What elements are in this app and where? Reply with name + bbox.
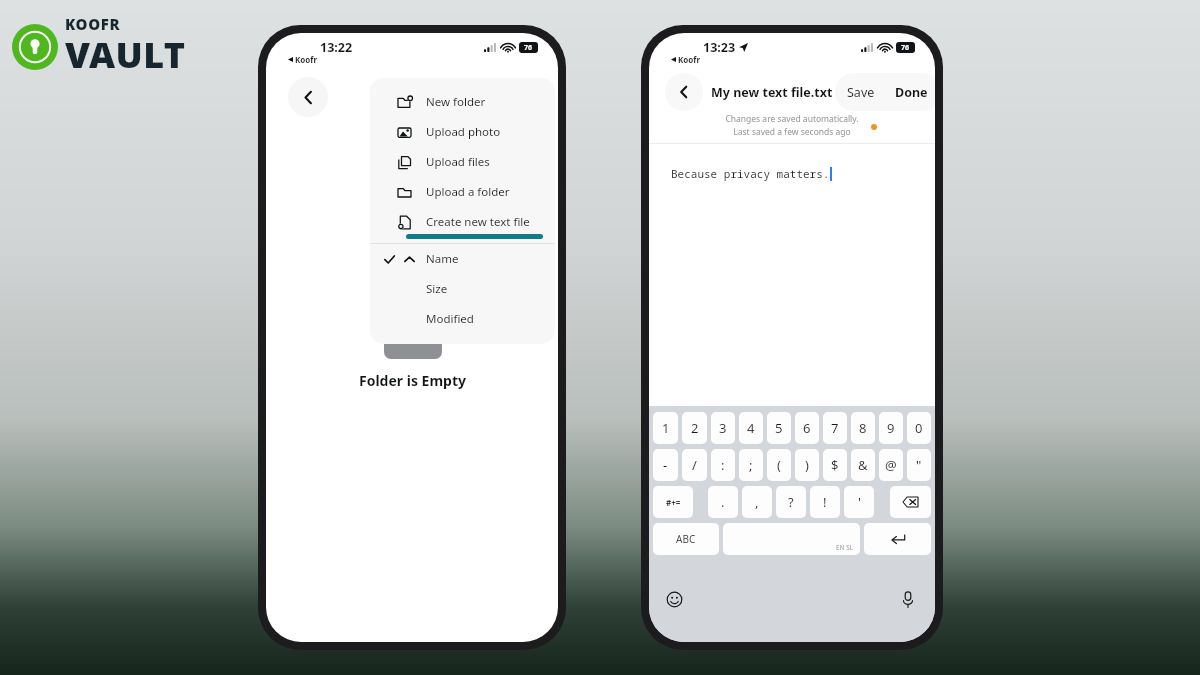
- staticText: Create new text file: [426, 214, 530, 230]
- staticText: Size: [426, 281, 448, 297]
- staticText: Upload a folder: [426, 184, 510, 200]
- button[interactable]: 4: [739, 412, 763, 444]
- button[interactable]: Emoji: [661, 586, 687, 612]
- staticText: 5: [775, 419, 783, 437]
- staticText: /: [692, 456, 697, 474]
- button[interactable]: :: [711, 449, 735, 481]
- button[interactable]: ': [844, 486, 874, 518]
- button[interactable]: 3: [711, 412, 735, 444]
- button[interactable]: ,: [742, 486, 772, 518]
- staticText: @: [885, 456, 897, 474]
- staticText: (: [777, 456, 781, 474]
- staticText: KOOFR: [65, 14, 121, 34]
- staticText: ,: [755, 493, 759, 511]
- staticText: Koofr: [678, 54, 700, 65]
- button[interactable]: 7: [823, 412, 847, 444]
- staticText: 9: [887, 419, 895, 437]
- staticText: &: [858, 456, 868, 474]
- staticText: !: [823, 493, 827, 511]
- staticText: Changes are saved automatically.: [725, 113, 859, 125]
- button[interactable]: Space: [723, 523, 860, 555]
- button[interactable]: !: [810, 486, 840, 518]
- button[interactable]: Name: [370, 244, 555, 274]
- staticText: 6: [803, 419, 811, 437]
- button[interactable]: ": [907, 449, 931, 481]
- staticText: ;: [749, 456, 753, 474]
- button[interactable]: @: [879, 449, 903, 481]
- staticText: 3: [719, 419, 727, 437]
- staticText: 2: [691, 419, 699, 437]
- staticText: Upload photo: [426, 124, 501, 140]
- button[interactable]: -: [653, 449, 678, 481]
- staticText: 7: [831, 419, 839, 437]
- button[interactable]: Save: [835, 74, 887, 111]
- button[interactable]: Done: [887, 74, 935, 111]
- staticText: ?: [788, 493, 794, 511]
- staticText: EN SL: [836, 543, 854, 552]
- button[interactable]: Size: [370, 274, 555, 304]
- staticText: 76: [524, 43, 533, 53]
- staticText: 8: [859, 419, 867, 437]
- button[interactable]: New folder: [370, 87, 555, 117]
- button[interactable]: ;: [739, 449, 763, 481]
- staticText: ': [858, 493, 861, 511]
- staticText: Done: [895, 84, 928, 101]
- staticText: New folder: [426, 94, 486, 110]
- button[interactable]: Dictation: [895, 586, 921, 612]
- button[interactable]: 0: [907, 412, 931, 444]
- staticText: 0: [915, 419, 923, 437]
- staticText: :: [721, 456, 725, 474]
- button[interactable]: Create new text file: [370, 207, 555, 237]
- button[interactable]: (: [767, 449, 791, 481]
- staticText: 76: [901, 43, 910, 53]
- button[interactable]: 2: [682, 412, 707, 444]
- button[interactable]: #+=: [653, 486, 693, 518]
- button[interactable]: 6: [795, 412, 819, 444]
- button[interactable]: ?: [776, 486, 806, 518]
- staticText: ABC: [676, 532, 696, 546]
- button[interactable]: 5: [767, 412, 791, 444]
- button[interactable]: Return: [864, 523, 931, 555]
- staticText: My new text file.txt: [711, 84, 833, 101]
- button[interactable]: /: [682, 449, 707, 481]
- button[interactable]: Modified: [370, 304, 555, 334]
- button[interactable]: &: [851, 449, 875, 481]
- staticText: ): [805, 456, 809, 474]
- staticText: $: [831, 456, 839, 474]
- staticText: Name: [426, 251, 459, 267]
- button[interactable]: 8: [851, 412, 875, 444]
- button[interactable]: ABC: [653, 523, 719, 555]
- staticText: Save: [847, 84, 875, 101]
- button[interactable]: $: [823, 449, 847, 481]
- staticText: 13:22: [320, 39, 353, 56]
- staticText: 4: [747, 419, 755, 437]
- button[interactable]: Back: [288, 77, 328, 117]
- staticText: VAULT: [65, 30, 186, 79]
- staticText: Because privacy matters.: [671, 166, 830, 181]
- staticText: Last saved a few seconds ago: [733, 126, 851, 138]
- staticText: -: [663, 456, 668, 474]
- button[interactable]: 1: [653, 412, 678, 444]
- staticText: 13:23: [703, 39, 736, 56]
- button[interactable]: Upload a folder: [370, 177, 555, 207]
- staticText: Upload files: [426, 154, 490, 170]
- button[interactable]: .: [708, 486, 738, 518]
- button[interactable]: Back: [665, 73, 703, 111]
- staticText: 1: [662, 419, 670, 437]
- staticText: .: [721, 493, 725, 511]
- button[interactable]: ): [795, 449, 819, 481]
- staticText: Koofr: [295, 54, 317, 65]
- staticText: #+=: [666, 497, 681, 508]
- button[interactable]: Upload photo: [370, 117, 555, 147]
- button[interactable]: Backspace: [890, 486, 931, 518]
- button[interactable]: Upload files: [370, 147, 555, 177]
- staticText: Modified: [426, 311, 474, 327]
- staticText: Folder is Empty: [359, 371, 466, 390]
- button[interactable]: 9: [879, 412, 903, 444]
- staticText: ": [916, 456, 922, 474]
